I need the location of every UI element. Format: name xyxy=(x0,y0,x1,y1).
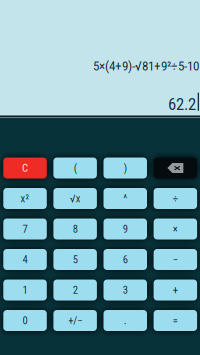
button[interactable]: 5 xyxy=(53,249,97,270)
button[interactable]: Delete xyxy=(154,157,197,178)
button[interactable]: × xyxy=(154,218,197,239)
staticText: 1 xyxy=(23,284,28,296)
button[interactable]: 0 xyxy=(3,310,47,331)
button[interactable]: C xyxy=(3,157,47,178)
button[interactable]: 7 xyxy=(3,218,47,239)
button[interactable]: 6 xyxy=(103,249,147,270)
staticText: 5 xyxy=(73,253,78,266)
staticText: 7 xyxy=(23,223,28,235)
button[interactable]: ( xyxy=(53,157,97,178)
button[interactable]: . xyxy=(103,310,147,331)
button[interactable]: x² xyxy=(3,188,47,209)
staticText: ÷ xyxy=(173,192,178,205)
button[interactable]: 1 xyxy=(3,279,47,300)
button[interactable]: 9 xyxy=(103,218,147,239)
staticText: +/− xyxy=(68,314,82,327)
button[interactable]: √x xyxy=(53,188,97,209)
staticText: 2 xyxy=(73,284,78,296)
staticText: ( xyxy=(74,162,77,174)
button[interactable]: 8 xyxy=(53,218,97,239)
staticText: √x xyxy=(70,192,81,205)
staticText: 0 xyxy=(23,314,28,327)
button[interactable]: ^ xyxy=(103,188,147,209)
staticText: 5×(4+9)-√81+9²÷5-10 xyxy=(93,58,199,74)
staticText: 9 xyxy=(123,223,128,235)
staticText: . xyxy=(124,314,127,327)
button[interactable]: ) xyxy=(103,157,147,178)
staticText: − xyxy=(173,253,178,266)
staticText: 6 xyxy=(123,253,128,266)
button[interactable]: 2 xyxy=(53,279,97,300)
staticText: = xyxy=(173,314,178,327)
staticText: 3 xyxy=(123,284,128,296)
staticText: ^ xyxy=(123,192,127,205)
button[interactable]: 3 xyxy=(103,279,147,300)
staticText: x² xyxy=(21,192,30,205)
button[interactable]: − xyxy=(154,249,197,270)
button[interactable]: = xyxy=(154,310,197,331)
button[interactable]: ÷ xyxy=(154,188,197,209)
staticText: 4 xyxy=(23,253,28,266)
staticText: C xyxy=(22,162,28,174)
staticText: ) xyxy=(124,162,127,174)
button[interactable]: + xyxy=(154,279,197,300)
staticText: 8 xyxy=(73,223,78,235)
button[interactable]: 4 xyxy=(3,249,47,270)
button[interactable]: +/− xyxy=(53,310,97,331)
staticText: 62.2 xyxy=(168,94,196,114)
staticText: × xyxy=(173,223,178,235)
staticText: + xyxy=(173,284,178,296)
